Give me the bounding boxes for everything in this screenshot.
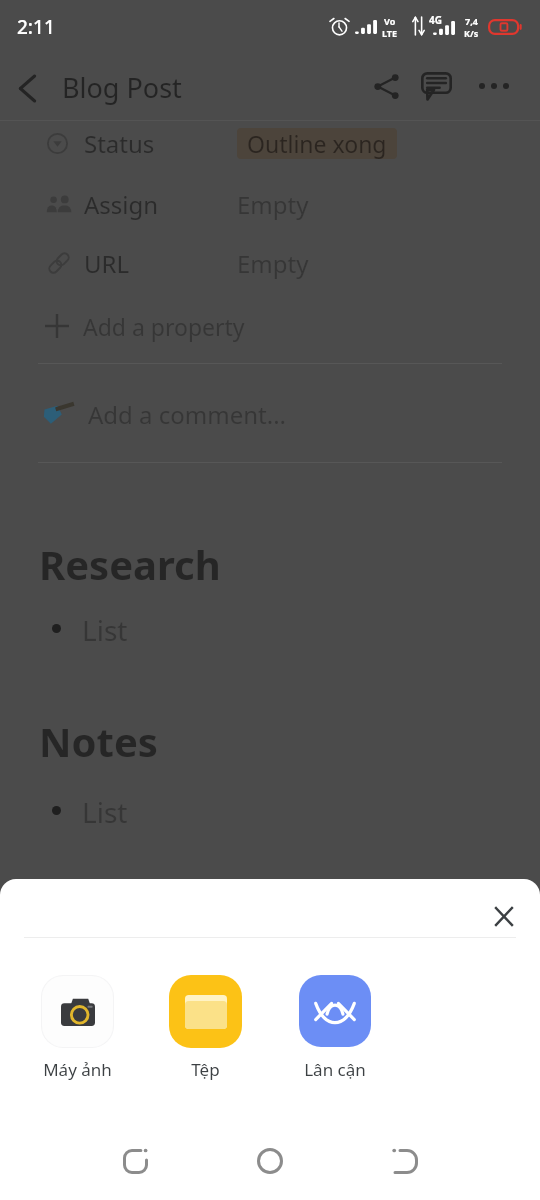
button[interactable]: Tệp [155,974,255,1081]
button[interactable]: Lân cận [285,974,385,1081]
staticText: LTE [382,27,398,39]
staticText: List [82,611,128,645]
staticText: Máy ảnh [43,1058,112,1081]
staticText: Lân cận [304,1058,366,1081]
staticText: Blog Post [62,69,182,106]
staticText: Assign [84,188,159,221]
staticText: K/s [464,27,479,39]
staticText: 4G [429,13,442,27]
button[interactable]: Back [377,1133,433,1189]
staticText: Add a comment... [88,398,287,431]
staticText: 7,4 [465,15,478,27]
staticText: Notes [39,714,158,768]
button[interactable]: Comments [412,62,460,110]
button[interactable]: Assign [0,180,540,228]
button[interactable]: Close [482,894,526,938]
staticText: 2:11 [17,14,55,40]
button[interactable]: Recent apps [107,1133,163,1189]
button[interactable]: Share [362,62,410,110]
button[interactable]: Status [0,119,540,167]
button[interactable]: Home [242,1133,298,1189]
staticText: Outline xong [247,128,387,159]
button[interactable]: More options [470,62,518,110]
staticText: Tệp [191,1058,220,1081]
staticText: Status [84,127,155,160]
staticText: Empty [237,247,309,280]
staticText: List [82,793,128,827]
staticText: URL [84,247,130,280]
staticText: Research [39,537,221,591]
button[interactable]: URL [0,239,540,287]
button[interactable]: Add a property [0,302,540,350]
staticText: Add a property [83,311,245,342]
button[interactable]: Add a comment... [0,387,540,441]
button[interactable]: Back [1,62,53,114]
button[interactable]: Máy ảnh [27,974,127,1081]
staticText: Vo [384,15,396,27]
staticText: Empty [237,188,309,221]
